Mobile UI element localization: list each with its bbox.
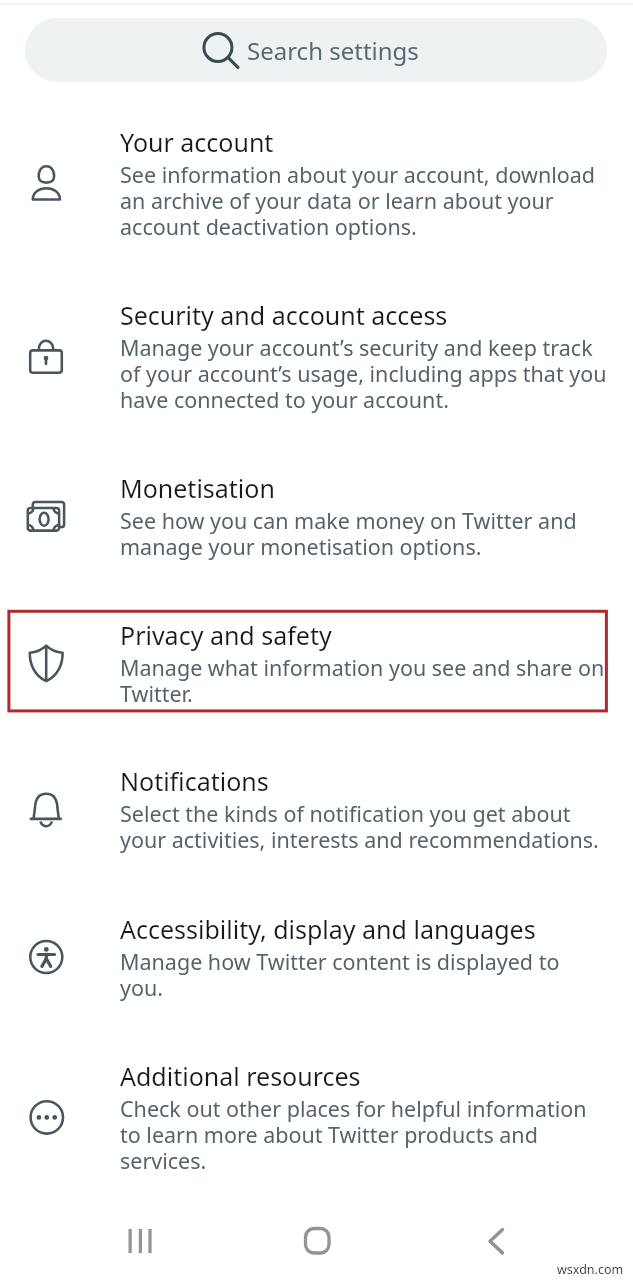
- staticText: wsxdn.com: [557, 1261, 624, 1278]
- button[interactable]: [0, 900, 633, 1010]
- button[interactable]: Search settings: [25, 18, 607, 82]
- button[interactable]: [0, 113, 633, 249]
- staticText: Accessibility, display and languages: [120, 912, 536, 946]
- staticText: Additional resources: [120, 1059, 361, 1093]
- staticText: See information about your account, down…: [120, 160, 608, 242]
- staticText: Manage what information you see and shar…: [120, 653, 608, 709]
- staticText: Notifications: [120, 764, 269, 798]
- staticText: Manage how Twitter content is displayed …: [120, 947, 608, 1003]
- staticText: Your account: [120, 125, 274, 159]
- staticText: Manage your account’s security and keep …: [120, 333, 608, 415]
- button[interactable]: [0, 752, 633, 862]
- staticText: See how you can make money on Twitter an…: [120, 506, 608, 562]
- button[interactable]: Back: [466, 1211, 526, 1271]
- staticText: Monetisation: [120, 471, 275, 505]
- button[interactable]: Home: [287, 1210, 347, 1270]
- button[interactable]: Recent apps: [110, 1211, 170, 1271]
- button[interactable]: [0, 459, 633, 569]
- button[interactable]: [0, 1047, 633, 1183]
- staticText: Privacy and safety: [120, 618, 332, 652]
- staticText: Search settings: [247, 34, 419, 67]
- button[interactable]: [0, 286, 633, 422]
- staticText: Security and account access: [120, 298, 448, 332]
- staticText: Select the kinds of notification you get…: [120, 799, 608, 855]
- button[interactable]: [0, 606, 633, 716]
- staticText: Check out other places for helpful infor…: [120, 1094, 608, 1176]
